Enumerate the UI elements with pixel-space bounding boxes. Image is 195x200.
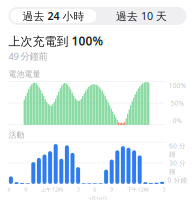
staticText: 下午 12時 (127, 186, 149, 193)
staticText: 過去 10 天 (116, 9, 167, 23)
staticText: 50% (170, 99, 184, 108)
staticText: 9 (110, 186, 113, 193)
staticText: 9 (24, 186, 27, 193)
staticText: 3 (77, 186, 80, 193)
staticText: 上次充電到 100% (8, 33, 103, 49)
button[interactable]: 過去 24 小時 (10, 9, 96, 23)
staticText: 電池電量 (8, 69, 40, 79)
staticText: 3月16日 (88, 195, 107, 200)
staticText: 0 分鐘 (167, 175, 187, 184)
staticText: 上午 12時 (41, 186, 63, 193)
staticText: 6 (93, 186, 96, 193)
staticText: 60 分鐘 (169, 141, 186, 158)
staticText: 100% (168, 81, 186, 90)
staticText: 49 分鐘前 (8, 50, 47, 62)
staticText: 3 (162, 186, 165, 193)
button[interactable]: 過去 10 天 (98, 9, 184, 23)
staticText: 0% (172, 116, 182, 125)
staticText: 過去 24 小時 (22, 9, 84, 23)
staticText: 活動 (8, 130, 24, 140)
staticText: 6 (7, 186, 10, 193)
staticText: 30 分鐘 (169, 158, 186, 175)
